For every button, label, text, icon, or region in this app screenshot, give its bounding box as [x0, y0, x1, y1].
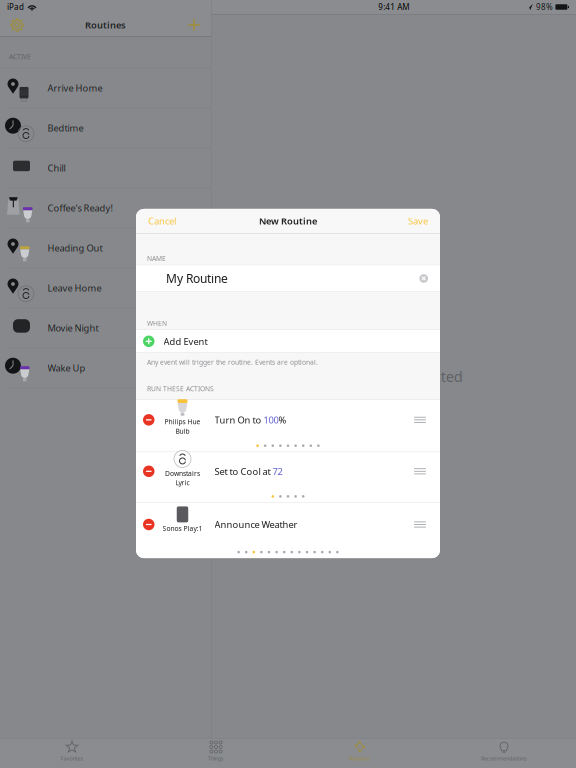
button[interactable]: Recommendations	[432, 739, 576, 768]
button[interactable]: Coffee's Ready!	[0, 188, 211, 228]
staticText: Arrive Home	[47, 82, 102, 94]
staticText: My Routine	[166, 270, 228, 286]
staticText: NAME	[147, 254, 166, 263]
staticText: No Routine Selected	[325, 367, 463, 386]
button[interactable]: Heading Out	[0, 228, 211, 268]
staticText: Sonos Play:1	[162, 524, 202, 533]
button[interactable]: Add Event	[136, 330, 440, 352]
staticText: Bedtime	[47, 122, 83, 134]
staticText: Things	[208, 755, 224, 762]
staticText: Heading Out	[47, 242, 102, 254]
staticText: Movie Night	[47, 322, 98, 334]
staticText: 9:41 AM	[378, 2, 409, 12]
button[interactable]: Bedtime	[0, 108, 211, 148]
staticText: Turn On to	[214, 414, 263, 426]
staticText: Downstairs	[165, 469, 200, 478]
staticText: Favorites	[60, 755, 83, 762]
staticText: Philips Hue	[164, 417, 200, 426]
staticText: Chill	[47, 162, 65, 174]
staticText: 98%	[536, 2, 553, 12]
staticText: Set to Cool at	[214, 465, 272, 477]
staticText: New Routine	[259, 215, 317, 227]
staticText: Recommendations	[481, 755, 527, 762]
button[interactable]: Routines	[288, 739, 432, 768]
staticText: Wake Up	[47, 362, 85, 374]
button[interactable]: Settings	[2, 14, 32, 36]
staticText: Routines	[85, 19, 126, 31]
staticText: Lyric	[175, 478, 189, 487]
staticText: 72	[272, 465, 282, 477]
button[interactable]: Save	[405, 211, 431, 231]
staticText: Announce Weather	[214, 518, 297, 531]
staticText: RUN THESE ACTIONS	[147, 384, 214, 393]
button[interactable]: Add routine	[179, 14, 209, 36]
staticText: Leave Home	[47, 282, 101, 294]
staticText: Save	[408, 215, 428, 227]
button[interactable]: Arrive Home	[0, 68, 211, 108]
staticText: 100	[263, 414, 278, 426]
button[interactable]: Movie Night	[0, 308, 211, 348]
button[interactable]: Leave Home	[0, 268, 211, 308]
button[interactable]: Cancel	[145, 211, 179, 231]
staticText: Cancel	[148, 215, 176, 227]
staticText: Add Event	[163, 335, 207, 347]
button[interactable]: Things	[144, 739, 288, 768]
staticText: %	[278, 414, 286, 426]
button[interactable]: Chill	[0, 148, 211, 188]
staticText: Routines	[349, 755, 370, 762]
staticText: Any event will trigger the routine. Even…	[147, 358, 318, 367]
staticText: WHEN	[147, 319, 167, 328]
staticText: Bulb	[175, 427, 189, 436]
staticText: ACTIVE	[9, 52, 31, 61]
button[interactable]: Wake Up	[0, 348, 211, 388]
staticText: Coffee's Ready!	[47, 202, 113, 214]
button[interactable]: Favorites	[0, 739, 144, 768]
staticText: iPad	[7, 2, 24, 12]
